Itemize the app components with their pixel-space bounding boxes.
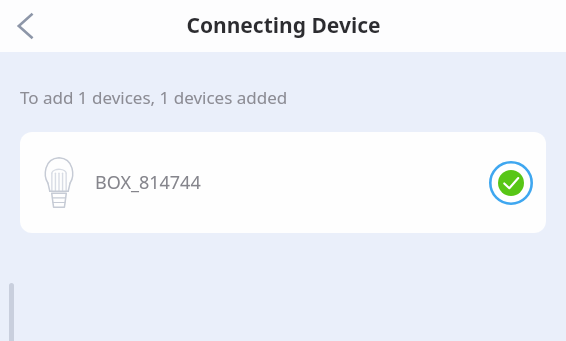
button[interactable]: BOX_814744 xyxy=(20,132,546,233)
staticText: Connecting Device xyxy=(186,11,381,40)
staticText: To add 1 devices, 1 devices added xyxy=(20,86,288,109)
button[interactable]: Device connected xyxy=(485,157,537,209)
button[interactable]: Back xyxy=(0,0,52,52)
staticText: BOX_814744 xyxy=(95,170,201,195)
